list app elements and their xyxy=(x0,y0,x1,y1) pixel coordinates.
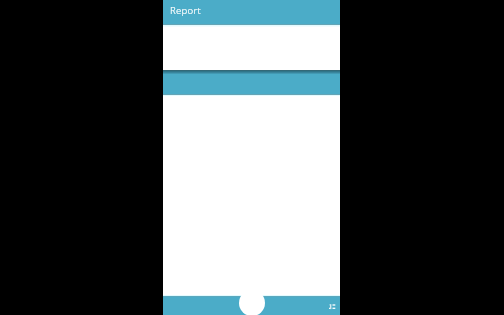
button[interactable]: Add report xyxy=(239,290,265,315)
staticText: Report xyxy=(170,4,202,17)
button[interactable] xyxy=(163,70,340,94)
button[interactable]: Report xyxy=(163,0,340,24)
button[interactable]: List view xyxy=(325,300,339,314)
